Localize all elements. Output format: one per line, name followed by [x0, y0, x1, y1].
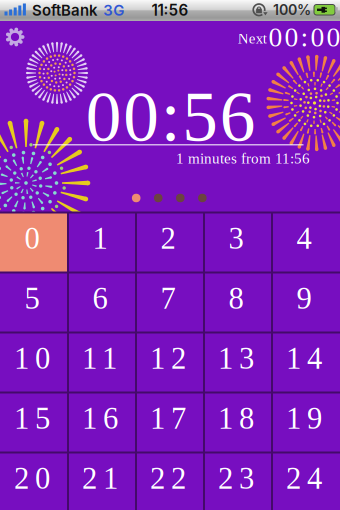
staticText: 14: [286, 341, 322, 375]
button[interactable]: 2: [135, 209, 201, 267]
staticText: 11: [82, 341, 118, 375]
staticText: 7: [160, 281, 175, 315]
button[interactable]: 1: [67, 209, 133, 267]
staticText: 20: [14, 461, 50, 495]
staticText: 0: [24, 221, 39, 255]
staticText: 12: [150, 341, 186, 375]
button[interactable]: 8: [203, 269, 269, 327]
button[interactable]: 11: [67, 329, 133, 387]
button[interactable]: 24: [271, 449, 337, 507]
staticText: 23: [218, 461, 254, 495]
button[interactable]: 15: [0, 389, 65, 447]
staticText: 9: [296, 281, 311, 315]
staticText: 6: [92, 281, 107, 315]
staticText: Next: [238, 30, 267, 47]
button[interactable]: 4: [271, 209, 337, 267]
staticText: 15: [14, 401, 50, 435]
button[interactable]: 19: [271, 389, 337, 447]
staticText: 22: [150, 461, 186, 495]
button[interactable]: 13: [203, 329, 269, 387]
button[interactable]: 17: [135, 389, 201, 447]
button[interactable]: 3: [203, 209, 269, 267]
button[interactable]: 7: [135, 269, 201, 327]
button[interactable]: 18: [203, 389, 269, 447]
staticText: 19: [286, 401, 322, 435]
staticText: 100%: [273, 1, 311, 18]
staticText: 5: [24, 281, 39, 315]
staticText: 8: [228, 281, 243, 315]
staticText: 13: [218, 341, 254, 375]
button[interactable]: 22: [135, 449, 201, 507]
button[interactable]: 9: [271, 269, 337, 327]
staticText: 4: [296, 221, 311, 255]
staticText: 10: [14, 341, 50, 375]
staticText: 18: [218, 401, 254, 435]
button[interactable]: 12: [135, 329, 201, 387]
staticText: 1: [92, 221, 107, 255]
button[interactable]: 21: [67, 449, 133, 507]
staticText: 3: [228, 221, 243, 255]
button[interactable]: 20: [0, 449, 65, 507]
staticText: 11:56: [151, 1, 188, 19]
button[interactable]: 10: [0, 329, 65, 387]
staticText: 3G: [103, 1, 124, 19]
staticText: 00:00: [268, 22, 340, 52]
button[interactable]: Settings: [0, 0, 30, 56]
button[interactable]: 23: [203, 449, 269, 507]
button[interactable]: 14: [271, 329, 337, 387]
button[interactable]: 5: [0, 269, 65, 327]
staticText: 24: [286, 461, 322, 495]
staticText: 21: [82, 461, 118, 495]
staticText: 1 minutes from 11:56: [176, 150, 310, 167]
button[interactable]: 0: [0, 209, 65, 267]
button[interactable]: 16: [67, 389, 133, 447]
staticText: 17: [150, 401, 186, 435]
staticText: 00:56: [86, 77, 256, 156]
button[interactable]: 6: [67, 269, 133, 327]
staticText: SoftBank: [32, 1, 98, 19]
staticText: 16: [82, 401, 118, 435]
staticText: 2: [160, 221, 175, 255]
